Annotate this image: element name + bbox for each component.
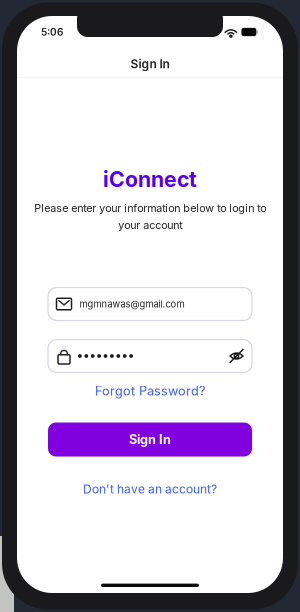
button[interactable]: Don't have an account? bbox=[73, 456, 227, 495]
staticText: iConnect bbox=[103, 166, 197, 192]
button[interactable]: Show password bbox=[225, 343, 248, 369]
staticText: Forgot Password? bbox=[95, 383, 205, 399]
staticText: Don't have an account? bbox=[83, 482, 217, 496]
staticText: 5:06 bbox=[41, 26, 63, 38]
staticText: Sign In bbox=[129, 432, 171, 447]
button[interactable]: Forgot Password? bbox=[85, 372, 215, 397]
button[interactable]: Sign In bbox=[17, 422, 283, 456]
staticText: mgmnawas@gmail.com bbox=[79, 298, 184, 310]
staticText: Sign In bbox=[130, 57, 169, 71]
staticText: Please enter your information below to l… bbox=[34, 202, 266, 231]
